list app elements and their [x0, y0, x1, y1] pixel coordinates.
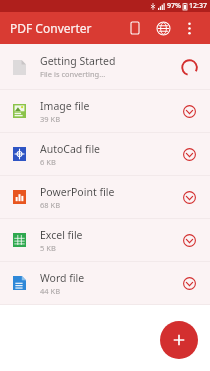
- button[interactable]: Getting Started: [0, 44, 210, 89]
- button[interactable]: Image file: [0, 90, 210, 132]
- staticText: Getting Started: [40, 54, 116, 68]
- button[interactable]: Download Image file: [178, 100, 200, 122]
- staticText: 44 KB: [40, 286, 61, 296]
- button[interactable]: Add file: [160, 321, 198, 359]
- button[interactable]: Device: [124, 17, 146, 39]
- staticText: 97%: [167, 1, 181, 11]
- button[interactable]: Download AutoCad file: [178, 143, 200, 165]
- button[interactable]: Word file: [0, 262, 210, 304]
- staticText: PDF Converter: [10, 20, 92, 36]
- button[interactable]: PowerPoint file: [0, 176, 210, 218]
- staticText: Excel file: [40, 228, 83, 242]
- staticText: File is converting...: [40, 69, 106, 79]
- button[interactable]: Download Word file: [178, 272, 200, 294]
- staticText: PowerPoint file: [40, 185, 115, 199]
- button[interactable]: Download PowerPoint file: [178, 186, 200, 208]
- staticText: 12:37: [189, 1, 207, 11]
- button[interactable]: Excel file: [0, 219, 210, 261]
- button[interactable]: Download Excel file: [178, 229, 200, 251]
- staticText: Image file: [40, 99, 90, 113]
- button[interactable]: Language: [152, 17, 174, 39]
- staticText: 5 KB: [40, 243, 56, 253]
- staticText: 68 KB: [40, 200, 61, 210]
- staticText: AutoCad file: [40, 142, 101, 156]
- staticText: 39 KB: [40, 114, 61, 124]
- staticText: 6 KB: [40, 157, 56, 167]
- button[interactable]: AutoCad file: [0, 133, 210, 175]
- other: Converting: [178, 56, 200, 78]
- staticText: Word file: [40, 271, 85, 285]
- button[interactable]: More options: [178, 17, 200, 39]
